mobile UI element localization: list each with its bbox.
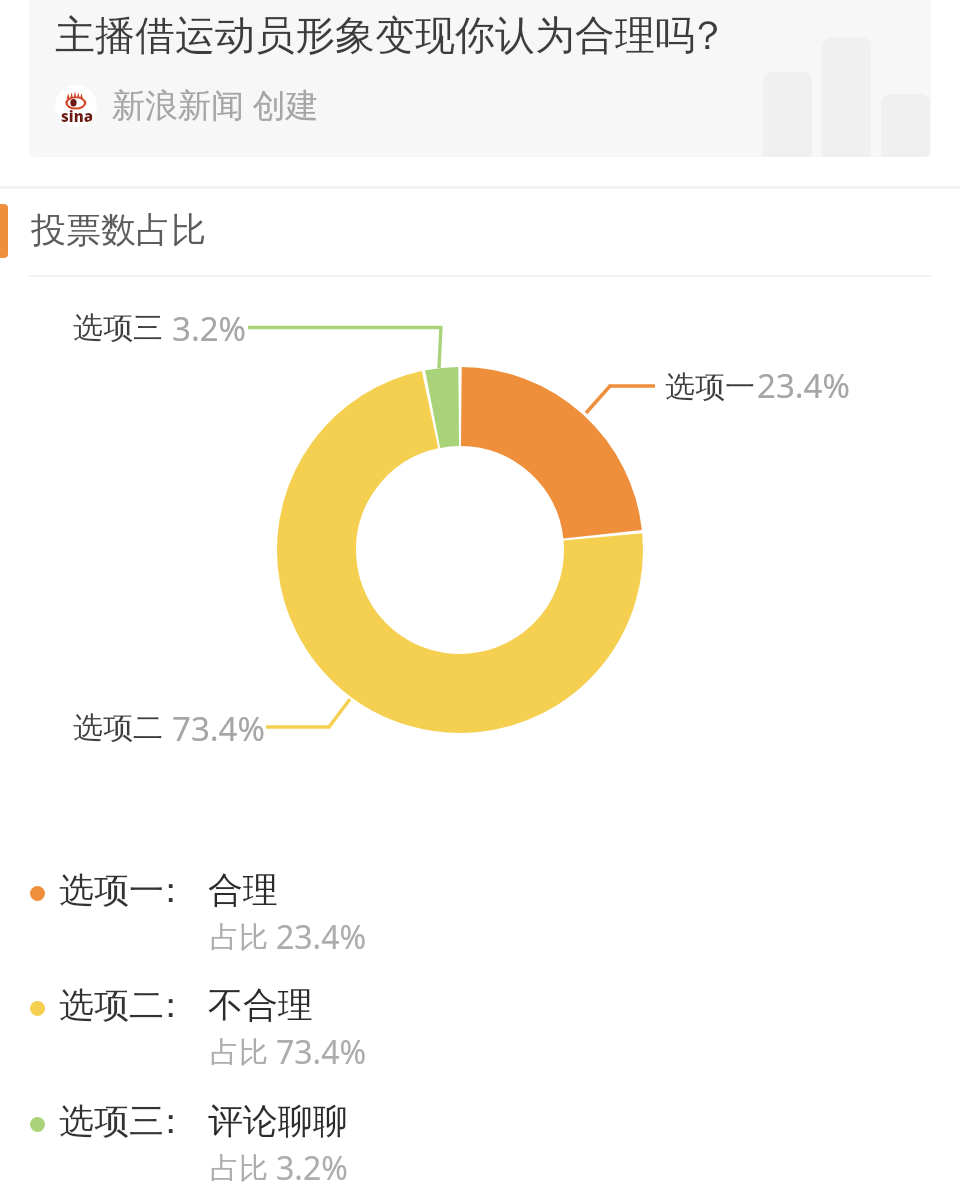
staticText: ： (153, 983, 188, 1027)
staticText: 不合理 (208, 983, 313, 1027)
staticText: 3.2% (172, 306, 247, 351)
staticText: 占比 (210, 1150, 268, 1187)
staticText: 73.4% (172, 706, 265, 751)
staticText: 23.4% (276, 915, 367, 959)
staticText: 主播借运动员形象变现你认为合理吗 (55, 10, 695, 60)
staticText: 23.4% (757, 363, 850, 408)
staticText: 占比 (210, 919, 268, 956)
other: Sina News (55, 85, 97, 127)
button[interactable]: 选项三 (0, 1099, 960, 1195)
staticText: 73.4% (276, 1030, 367, 1074)
staticText: ： (153, 868, 188, 912)
staticText: 选项三 (59, 1099, 164, 1143)
staticText: 选项一 (59, 868, 164, 912)
staticText: ： (153, 1099, 188, 1143)
button[interactable]: 投票数占比 (0, 196, 960, 266)
staticText: 合理 (208, 868, 278, 912)
staticText: 占比 (210, 1034, 268, 1071)
staticText: 评论聊聊 (208, 1099, 348, 1143)
button[interactable]: 选项一 (0, 868, 960, 964)
staticText: sina (61, 106, 94, 126)
staticText: 投票数占比 (31, 208, 206, 252)
staticText: ？ (688, 10, 728, 60)
button[interactable] (29, 0, 931, 157)
staticText: 选项一 (665, 368, 755, 406)
staticText: 选项二 (59, 983, 164, 1027)
staticText: 选项三 (73, 309, 163, 347)
staticText: 新浪新闻 创建 (112, 82, 319, 127)
staticText: 3.2% (276, 1146, 348, 1190)
staticText: 选项二 (73, 709, 163, 747)
button[interactable]: 选项二 (0, 983, 960, 1079)
